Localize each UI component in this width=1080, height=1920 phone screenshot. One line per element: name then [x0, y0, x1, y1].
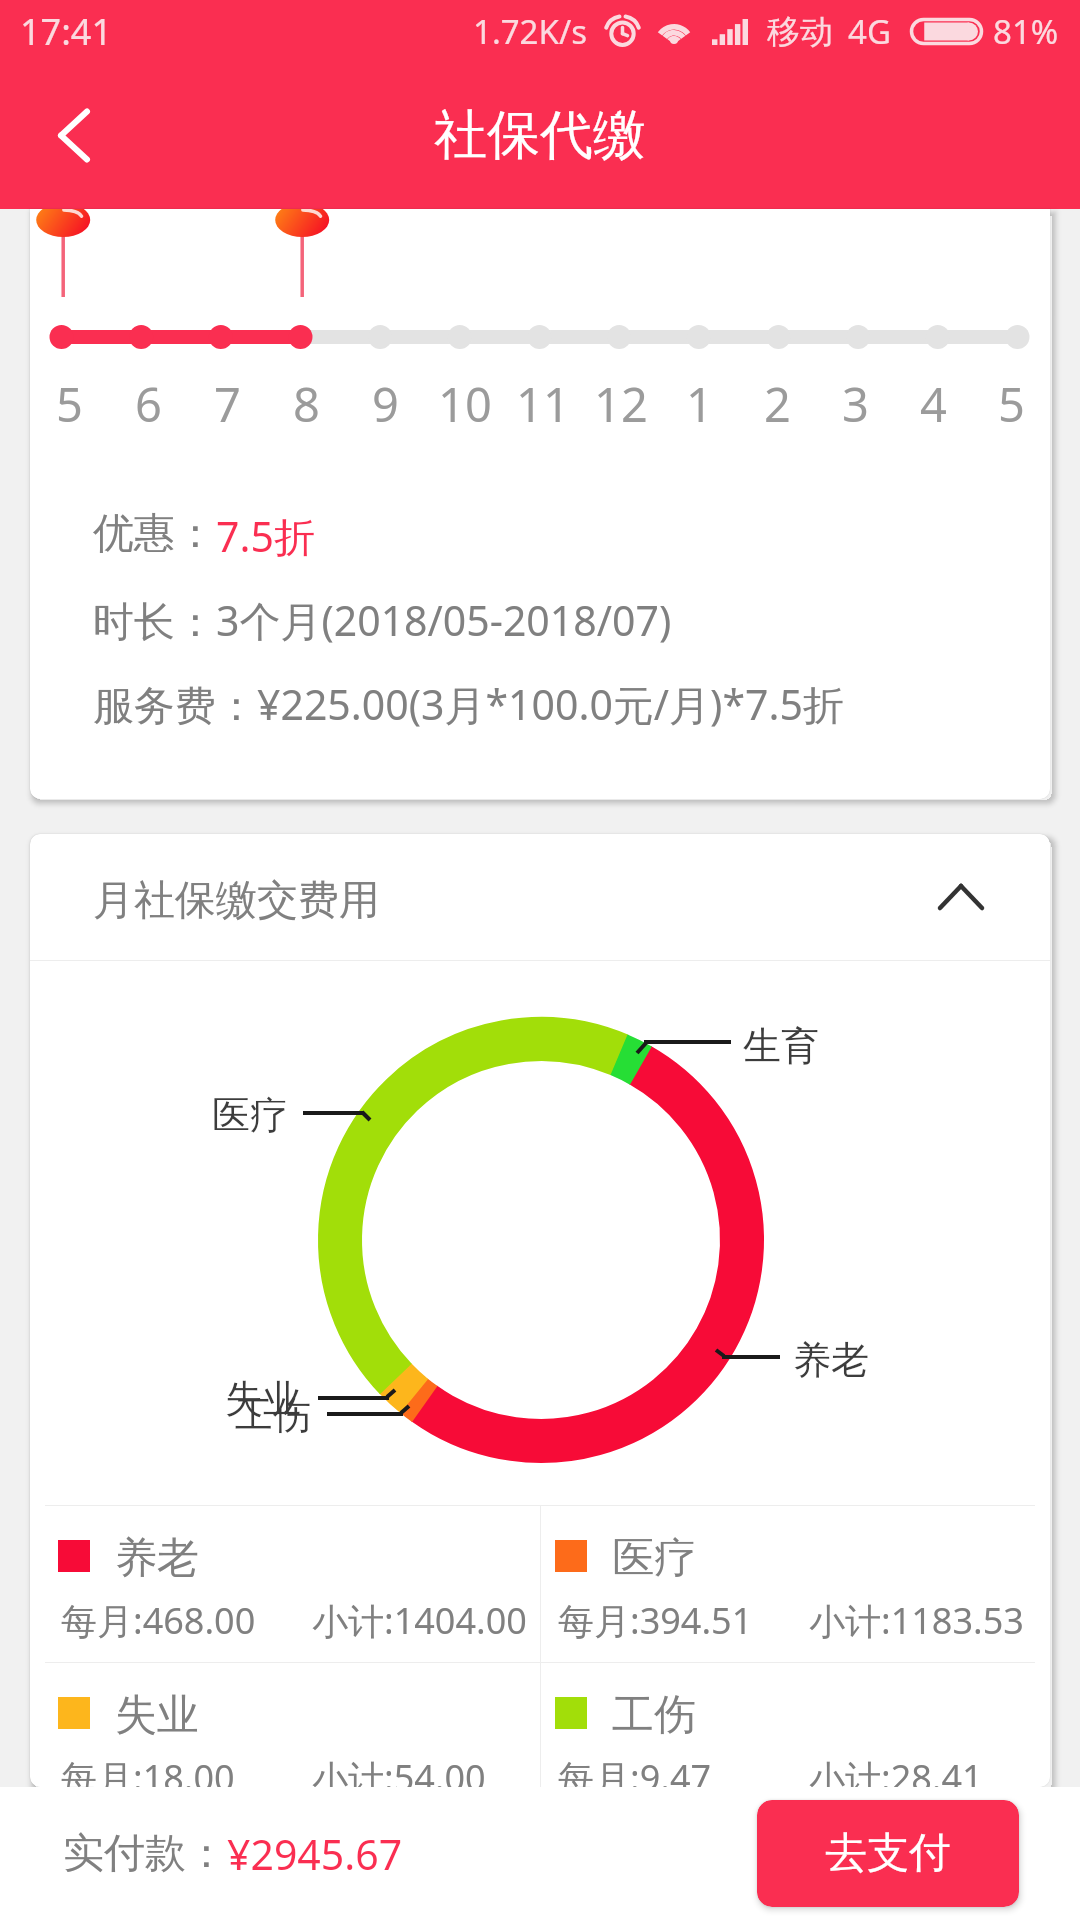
staticText: 每月:9.47	[558, 1753, 809, 1787]
staticText: 养老	[793, 1336, 869, 1384]
staticText: 小计:54.00	[312, 1753, 486, 1787]
staticText: 月社保缴交费用	[93, 875, 380, 927]
staticText: 医疗	[212, 1091, 288, 1139]
staticText: 移动	[767, 11, 833, 53]
staticText: 工伤	[612, 1689, 696, 1742]
staticText: 2	[764, 372, 791, 436]
staticText: 7.5折	[216, 508, 315, 564]
staticText: 工伤	[235, 1391, 311, 1439]
staticText: 小计:1183.53	[809, 1596, 1024, 1645]
staticText: 去支付	[825, 1827, 951, 1880]
staticText: 失业	[225, 1375, 301, 1423]
button[interactable]: 去支付	[757, 1800, 1019, 1907]
staticText: 5	[998, 372, 1025, 436]
staticText: 服务费：¥225.00(3月*100.0元/月)*7.5折	[93, 676, 844, 732]
staticText: 9	[372, 372, 399, 436]
staticText: 7	[214, 372, 241, 436]
staticText: 养老	[115, 1532, 199, 1585]
staticText: 10	[438, 372, 492, 436]
button[interactable]: 月社保缴交费用	[30, 834, 1050, 960]
staticText: 1.72K/s	[473, 9, 587, 54]
staticText: 3	[842, 372, 869, 436]
staticText: 优惠：	[93, 508, 216, 560]
staticText: ¥2945.67	[227, 1826, 403, 1882]
staticText: 每月:468.00	[61, 1596, 312, 1645]
staticText: 社保代缴	[434, 102, 646, 169]
staticText: 失业	[115, 1689, 199, 1742]
staticText: 1	[686, 372, 713, 436]
staticText: 81%	[993, 9, 1059, 54]
staticText: 6	[135, 372, 162, 436]
staticText: 8	[293, 372, 320, 436]
staticText: 时长：3个月(2018/05-2018/07)	[93, 592, 672, 648]
staticText: 生育	[743, 1022, 819, 1070]
staticText: 5	[56, 372, 83, 436]
staticText: 每月:394.51	[558, 1596, 809, 1645]
staticText: 小计:28.41	[809, 1753, 983, 1787]
staticText: 小计:1404.00	[312, 1596, 527, 1645]
button[interactable]: Back	[0, 62, 140, 209]
staticText: 4	[920, 372, 947, 436]
staticText: 17:41	[20, 7, 113, 56]
staticText: 每月:18.00	[61, 1753, 312, 1787]
staticText: 11	[516, 372, 570, 436]
staticText: 实付款：	[63, 1828, 227, 1880]
staticText: 4G	[848, 9, 891, 54]
staticText: 12	[594, 372, 648, 436]
staticText: 医疗	[612, 1532, 696, 1585]
